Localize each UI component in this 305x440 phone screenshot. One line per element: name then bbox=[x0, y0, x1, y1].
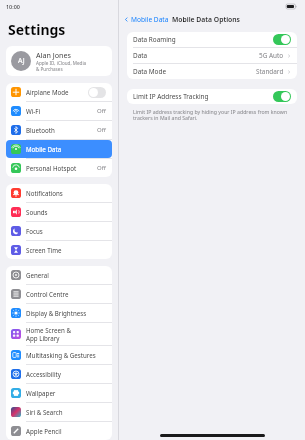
button[interactable]: Apple Pencil bbox=[6, 422, 112, 440]
staticText: Mobile Data bbox=[26, 145, 62, 153]
staticText: Standard bbox=[256, 67, 284, 76]
staticText: Bluetooth bbox=[26, 126, 55, 134]
staticText: Data Mode bbox=[133, 67, 167, 76]
staticText: Home Screen & bbox=[26, 326, 71, 334]
staticText: Settings bbox=[8, 20, 66, 39]
staticText: Off bbox=[97, 126, 106, 134]
staticText: Siri & Search bbox=[26, 408, 63, 416]
button[interactable]: Toggle bbox=[273, 34, 291, 45]
staticText: Mobile Data Options bbox=[172, 15, 240, 24]
button[interactable]: Toggle bbox=[273, 91, 291, 102]
staticText: App Library bbox=[26, 334, 60, 342]
button[interactable]: Airplane Mode bbox=[6, 83, 112, 101]
button[interactable]: Data Roaming bbox=[127, 32, 297, 47]
button[interactable]: Display & Brightness bbox=[6, 304, 112, 322]
button[interactable]: Home Screen & bbox=[6, 323, 112, 345]
staticText: 5G Auto bbox=[259, 51, 284, 60]
staticText: Data bbox=[133, 51, 148, 60]
button[interactable]: Bluetooth bbox=[6, 121, 112, 139]
button[interactable]: Siri & Search bbox=[6, 403, 112, 421]
button[interactable]: Control Centre bbox=[6, 285, 112, 303]
button[interactable]: Data Mode bbox=[127, 64, 297, 79]
button[interactable]: AJ bbox=[6, 46, 112, 76]
staticText: Airplane Mode bbox=[26, 88, 69, 96]
staticText: AJ bbox=[18, 56, 25, 66]
staticText: Personal Hotspot bbox=[26, 164, 77, 172]
staticText: Accessibility bbox=[26, 370, 61, 378]
staticText: Notifications bbox=[26, 189, 63, 197]
button[interactable]: Toggle bbox=[88, 87, 106, 98]
button[interactable]: Wi-Fi bbox=[6, 102, 112, 120]
staticText: & Purchases bbox=[36, 66, 63, 72]
button[interactable]: Notifications bbox=[6, 184, 112, 202]
staticText: Sounds bbox=[26, 208, 48, 216]
staticText: Limit IP Address Tracking bbox=[133, 92, 209, 101]
staticText: Alan Jones bbox=[36, 50, 72, 60]
other: Back bbox=[124, 17, 129, 22]
button[interactable]: Accessibility bbox=[6, 365, 112, 383]
staticText: Apple Pencil bbox=[26, 427, 62, 435]
button[interactable]: Mobile Data bbox=[6, 140, 112, 158]
button[interactable]: Limit IP Address Tracking bbox=[127, 89, 297, 104]
staticText: General bbox=[26, 271, 49, 279]
staticText: Mobile Data bbox=[131, 15, 169, 24]
button[interactable]: Back bbox=[124, 15, 169, 24]
staticText: Off bbox=[97, 164, 106, 172]
button[interactable]: Data bbox=[127, 48, 297, 63]
button[interactable]: Multitasking & Gestures bbox=[6, 346, 112, 364]
staticText: Display & Brightness bbox=[26, 309, 87, 317]
staticText: Off bbox=[97, 107, 106, 115]
button[interactable]: Sounds bbox=[6, 203, 112, 221]
button[interactable]: Wallpaper bbox=[6, 384, 112, 402]
staticText: Wi-Fi bbox=[26, 107, 41, 115]
staticText: Multitasking & Gestures bbox=[26, 351, 96, 359]
staticText: 10:00 bbox=[6, 3, 20, 10]
button[interactable]: Screen Time bbox=[6, 241, 112, 259]
button[interactable]: Personal Hotspot bbox=[6, 159, 112, 177]
staticText: Data Roaming bbox=[133, 35, 176, 44]
staticText: Limit IP address tracking by hiding your… bbox=[133, 108, 291, 122]
staticText: Screen Time bbox=[26, 246, 62, 254]
staticText: Focus bbox=[26, 227, 43, 235]
staticText: Wallpaper bbox=[26, 389, 56, 397]
staticText: Apple ID, iCloud, Media bbox=[36, 60, 87, 66]
button[interactable]: Focus bbox=[6, 222, 112, 240]
button[interactable]: General bbox=[6, 266, 112, 284]
staticText: Control Centre bbox=[26, 290, 69, 298]
